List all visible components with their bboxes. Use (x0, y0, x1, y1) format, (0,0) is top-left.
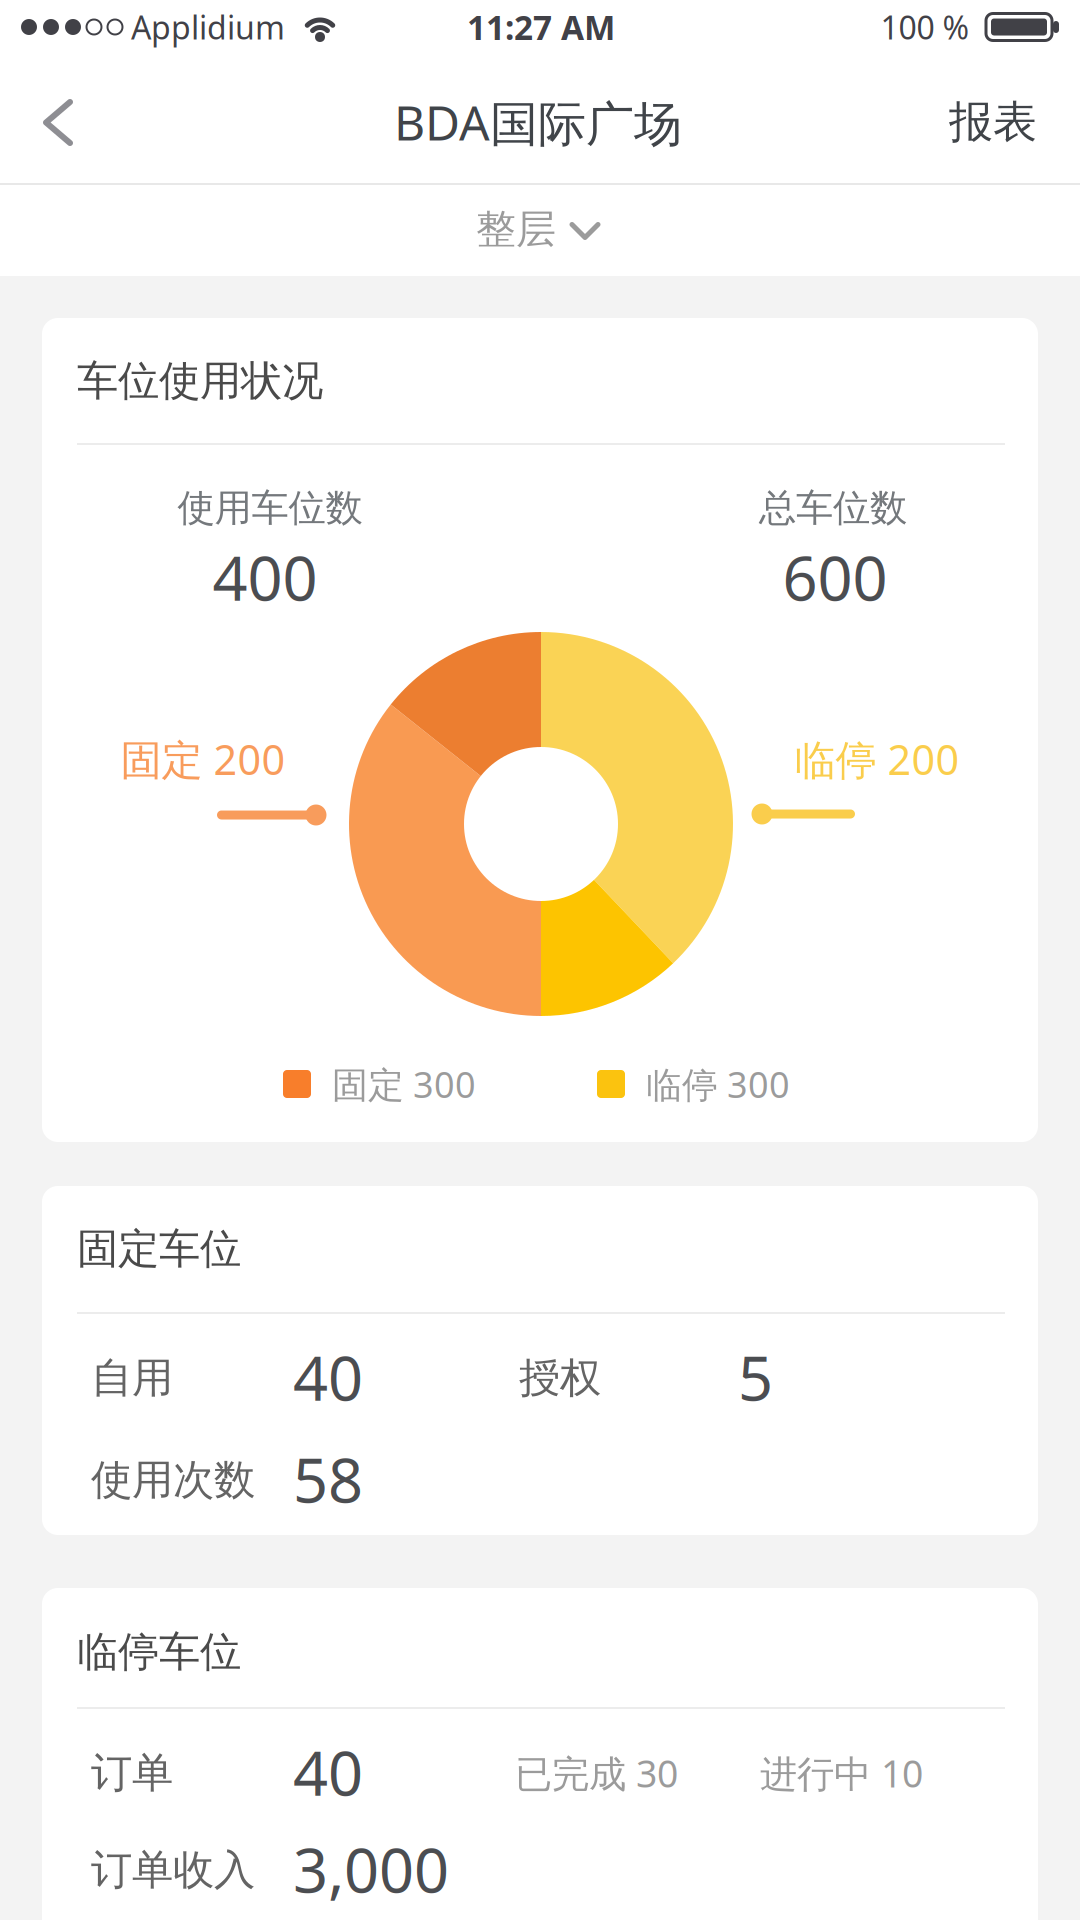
button[interactable] (15, 77, 105, 167)
staticText: 使用次数 (91, 1455, 255, 1505)
staticText: 400 (212, 536, 317, 618)
staticText: 11:27 AM (467, 5, 615, 49)
staticText: 总车位数 (759, 485, 907, 531)
staticText: 58 (293, 1438, 363, 1520)
staticText: Applidium (131, 6, 285, 48)
staticText: 固定 300 (332, 1060, 476, 1108)
staticText: 临停 300 (646, 1060, 790, 1108)
staticText: 临停 200 (794, 732, 959, 786)
staticText: 订单收入 (91, 1845, 255, 1895)
staticText: 已完成 30 (515, 1748, 678, 1798)
staticText: 40 (293, 1336, 363, 1418)
staticText: 5 (738, 1336, 773, 1418)
staticText: 授权 (519, 1353, 601, 1403)
staticText: 100 % (880, 6, 969, 48)
staticText: 固定 200 (120, 732, 285, 786)
staticText: 使用车位数 (177, 485, 362, 531)
staticText: 固定车位 (77, 1224, 241, 1274)
staticText: BDA国际广场 (394, 90, 682, 154)
staticText: 40 (293, 1731, 363, 1813)
staticText: 车位使用状况 (77, 356, 323, 406)
staticText: 整层 (476, 205, 556, 254)
staticText: 3,000 (293, 1828, 449, 1910)
staticText: 自用 (91, 1353, 173, 1403)
staticText: 进行中 10 (760, 1748, 923, 1798)
staticText: 600 (782, 536, 887, 618)
staticText: 订单 (91, 1748, 173, 1798)
staticText: 临停车位 (77, 1627, 241, 1677)
button[interactable]: 报表 (949, 95, 1037, 149)
button[interactable]: 整层 (0, 184, 1080, 275)
staticText: 报表 (949, 95, 1037, 149)
